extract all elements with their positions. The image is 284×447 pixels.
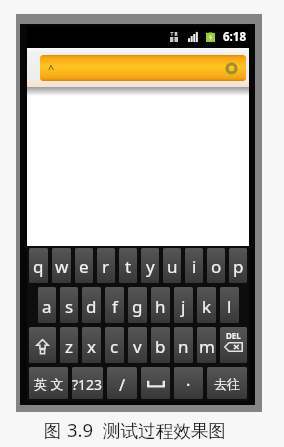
other: Shift xyxy=(36,339,49,354)
button[interactable]: p xyxy=(229,248,247,283)
button[interactable]: DEL xyxy=(220,327,247,363)
staticText: ?123 xyxy=(72,375,103,394)
button[interactable]: f xyxy=(105,287,124,323)
button[interactable]: s xyxy=(60,287,78,323)
staticText: 去往 xyxy=(214,376,240,392)
other: Space xyxy=(147,379,165,388)
staticText: f xyxy=(112,295,118,318)
staticText: q xyxy=(33,255,44,278)
staticText: u xyxy=(167,255,178,278)
button[interactable]: a xyxy=(38,287,56,323)
button[interactable]: g xyxy=(128,287,147,323)
staticText: · xyxy=(186,373,191,395)
staticText: h xyxy=(155,295,166,318)
staticText: r xyxy=(102,255,110,278)
staticText: ^ xyxy=(48,61,55,76)
staticText: a xyxy=(42,295,52,318)
staticText: l xyxy=(227,295,232,318)
staticText: o xyxy=(211,255,222,278)
other: Delete xyxy=(224,342,243,352)
button[interactable]: y xyxy=(141,248,159,283)
staticText: k xyxy=(202,295,212,318)
staticText: e xyxy=(79,255,89,278)
button[interactable]: 英 文 xyxy=(29,367,68,399)
button[interactable]: k xyxy=(197,287,216,323)
button[interactable]: · xyxy=(174,367,203,399)
button[interactable]: / xyxy=(107,367,137,399)
staticText: 测试过程效果图 xyxy=(103,420,227,442)
staticText: w xyxy=(55,255,69,278)
button[interactable]: m xyxy=(197,327,216,363)
button[interactable]: z xyxy=(60,327,78,363)
staticText: DEL xyxy=(226,330,241,341)
button[interactable]: w xyxy=(52,248,71,283)
staticText: z xyxy=(65,335,73,358)
staticText: d xyxy=(86,295,97,318)
button[interactable]: h xyxy=(151,287,170,323)
staticText: n xyxy=(178,335,189,358)
button[interactable]: o xyxy=(207,248,225,283)
button[interactable]: n xyxy=(174,327,193,363)
button[interactable]: q xyxy=(29,248,48,283)
button[interactable]: c xyxy=(105,327,124,363)
staticText: 英 文 xyxy=(34,375,64,393)
button[interactable]: e xyxy=(75,248,93,283)
button[interactable]: d xyxy=(82,287,101,323)
staticText: 6:18 xyxy=(223,29,246,45)
staticText: 图 xyxy=(44,420,62,442)
button[interactable]: Shift xyxy=(29,327,56,363)
staticText: j xyxy=(181,295,186,318)
staticText: y xyxy=(146,255,155,278)
staticText: / xyxy=(119,373,126,395)
button[interactable]: v xyxy=(128,327,147,363)
button[interactable]: t xyxy=(119,248,137,283)
staticText: c xyxy=(110,335,119,358)
button[interactable]: x xyxy=(82,327,101,363)
staticText: m xyxy=(199,335,215,358)
button[interactable]: ?123 xyxy=(72,367,103,399)
button[interactable]: ^ xyxy=(40,55,246,81)
button[interactable]: j xyxy=(174,287,193,323)
button[interactable]: l xyxy=(220,287,239,323)
staticText: b xyxy=(155,335,166,358)
button[interactable]: i xyxy=(185,248,203,283)
staticText: i xyxy=(192,255,197,278)
button[interactable]: Space xyxy=(141,367,170,399)
staticText: x xyxy=(87,335,96,358)
staticText: g xyxy=(132,295,143,318)
staticText: p xyxy=(233,255,244,278)
button[interactable]: 去往 xyxy=(207,367,247,399)
button[interactable]: r xyxy=(97,248,115,283)
staticText: 3.9 xyxy=(67,417,94,442)
button[interactable]: u xyxy=(163,248,181,283)
staticText: v xyxy=(133,335,142,358)
staticText: t xyxy=(125,255,132,278)
button[interactable]: b xyxy=(151,327,170,363)
staticText: s xyxy=(65,295,74,318)
other: Loading xyxy=(225,62,238,75)
